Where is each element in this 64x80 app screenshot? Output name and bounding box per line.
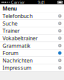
staticText: Impressum (2, 64, 31, 71)
button[interactable]: Telefonbuch (0, 12, 64, 20)
staticText: Carrier (11, 0, 25, 5)
staticText: Nachrichten (2, 57, 32, 64)
staticText: > (59, 44, 61, 47)
staticText: > (59, 14, 61, 18)
button[interactable]: Nachrichten (0, 57, 64, 64)
staticText: > (59, 66, 61, 69)
staticText: Menu (2, 5, 16, 12)
button[interactable]: Forum (0, 49, 64, 57)
staticText: Telefonbuch (2, 12, 32, 20)
staticText: > (59, 36, 61, 40)
button[interactable]: Suche (0, 20, 64, 27)
staticText: Suche (2, 20, 17, 27)
staticText: Trainer (2, 27, 19, 34)
button[interactable]: Trainer (0, 27, 64, 35)
staticText: Vokabeltrainer (2, 35, 37, 42)
button[interactable]: Vokabeltrainer (0, 35, 64, 42)
staticText: > (59, 22, 61, 25)
staticText: 9:41 (38, 0, 45, 5)
staticText: Forum (2, 49, 18, 57)
button[interactable]: Grammatik (0, 42, 64, 49)
staticText: Grammatik (2, 42, 30, 49)
staticText: > (59, 29, 61, 32)
button[interactable]: Impressum (0, 64, 64, 72)
staticText: > (59, 59, 61, 62)
